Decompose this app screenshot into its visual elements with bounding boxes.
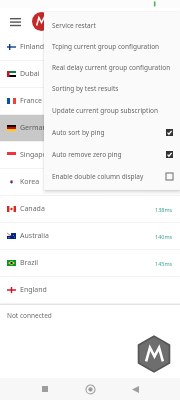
staticText: France bbox=[20, 96, 173, 106]
staticText: Not connected bbox=[7, 311, 52, 320]
button[interactable]: Sorting by test results bbox=[44, 78, 180, 99]
staticText: Australia bbox=[20, 231, 155, 241]
button[interactable]: Finland bbox=[0, 34, 180, 60]
staticText: Dubai bbox=[20, 69, 173, 79]
button[interactable]: Korea bbox=[0, 169, 180, 195]
button[interactable]: Singapo... bbox=[0, 142, 180, 168]
staticText: 137ms bbox=[155, 179, 173, 186]
button[interactable]: Dubai bbox=[0, 61, 180, 87]
staticText: Auto sort by ping bbox=[52, 128, 162, 137]
button[interactable]: Open navigation menu bbox=[6, 12, 24, 30]
staticText: Tcping current group configuration bbox=[52, 42, 173, 51]
button[interactable]: Recent apps bbox=[36, 380, 54, 398]
button[interactable]: App logo bbox=[32, 12, 51, 31]
staticText: Auto remove zero ping bbox=[52, 150, 162, 159]
button[interactable]: Update current group subscription bbox=[44, 99, 180, 121]
button[interactable]: France bbox=[0, 88, 180, 114]
button[interactable]: Back bbox=[126, 380, 144, 398]
staticText: Finland bbox=[20, 42, 173, 52]
staticText: German bbox=[20, 123, 173, 133]
staticText: Enable double column display bbox=[52, 172, 162, 181]
staticText: Real delay current group configuration bbox=[52, 63, 173, 72]
button[interactable]: England bbox=[0, 277, 180, 303]
staticText: Update current group subscription bbox=[52, 106, 173, 115]
staticText: Service restart bbox=[52, 21, 173, 30]
button[interactable]: Real delay current group configuration bbox=[44, 57, 180, 78]
staticText: 140ms bbox=[155, 233, 173, 240]
button[interactable]: Tcping current group configuration bbox=[44, 36, 180, 57]
staticText: 138ms bbox=[155, 206, 173, 213]
button[interactable]: Service restart bbox=[44, 15, 180, 36]
staticText: Korea bbox=[20, 177, 155, 187]
button[interactable]: Auto sort by ping bbox=[44, 121, 180, 143]
button[interactable]: Home bbox=[81, 380, 99, 398]
staticText: Brazil bbox=[20, 258, 155, 268]
button[interactable]: Australia bbox=[0, 223, 180, 249]
button[interactable]: Auto remove zero ping bbox=[44, 143, 180, 165]
staticText: England bbox=[20, 285, 173, 295]
button[interactable]: German bbox=[0, 115, 180, 141]
staticText: 145ms bbox=[155, 260, 173, 267]
staticText: Sorting by test results bbox=[52, 84, 173, 93]
button[interactable]: Canada bbox=[0, 196, 180, 222]
staticText: Singapo... bbox=[20, 150, 173, 160]
button[interactable]: Enable double column display bbox=[44, 165, 180, 187]
staticText: Canada bbox=[20, 204, 155, 214]
button[interactable]: Brazil bbox=[0, 250, 180, 276]
button[interactable]: Connect bbox=[134, 334, 174, 374]
